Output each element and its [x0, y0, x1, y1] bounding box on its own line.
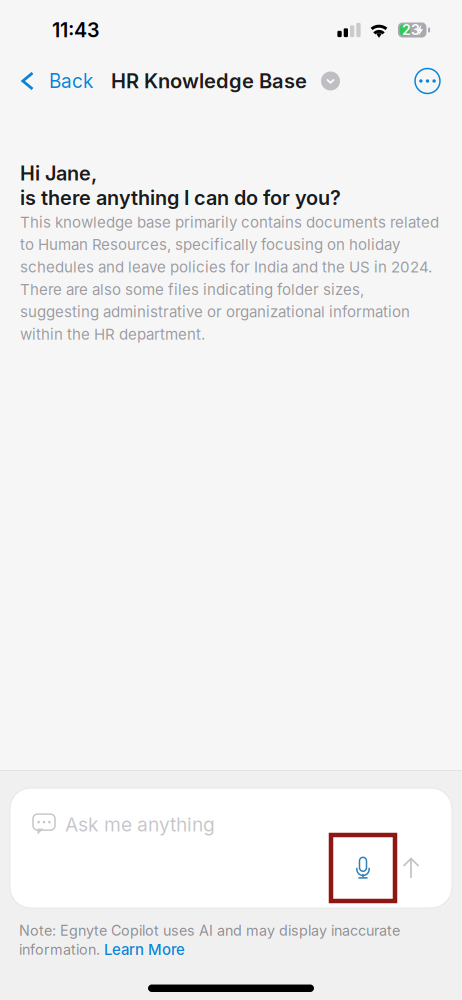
staticText: Back	[49, 69, 93, 92]
staticText: 23	[402, 21, 420, 38]
staticText: There are also some files indicating fol…	[20, 280, 364, 298]
staticText: to Human Resources, specifically focusin…	[20, 235, 400, 254]
staticText: This knowledge base primarily contains d…	[20, 213, 439, 231]
staticText: is there anything I can do for you?	[20, 186, 341, 210]
staticText: within the HR department.	[20, 325, 205, 343]
button[interactable]: Send message	[395, 846, 435, 890]
staticText: Hi Jane,	[20, 161, 97, 185]
staticText: schedules and leave policies for India a…	[20, 258, 432, 276]
staticText: HR Knowledge Base	[111, 69, 307, 93]
button[interactable]: Ask me anything	[0, 771, 462, 908]
staticText: suggesting administrative or organizatio…	[20, 303, 410, 321]
staticText: 11:43	[52, 18, 100, 42]
button[interactable]: Voice input	[331, 835, 395, 901]
staticText: information.	[19, 941, 104, 958]
staticText: Note: Egnyte Copilot uses AI and may dis…	[19, 922, 400, 939]
staticText: Learn More	[104, 940, 185, 959]
button[interactable]: More options	[415, 60, 462, 101]
button[interactable]: Back	[0, 60, 93, 101]
button[interactable]: Change knowledge base	[307, 63, 340, 98]
staticText: Ask me anything	[65, 813, 215, 836]
button[interactable]: Learn More	[104, 940, 185, 959]
